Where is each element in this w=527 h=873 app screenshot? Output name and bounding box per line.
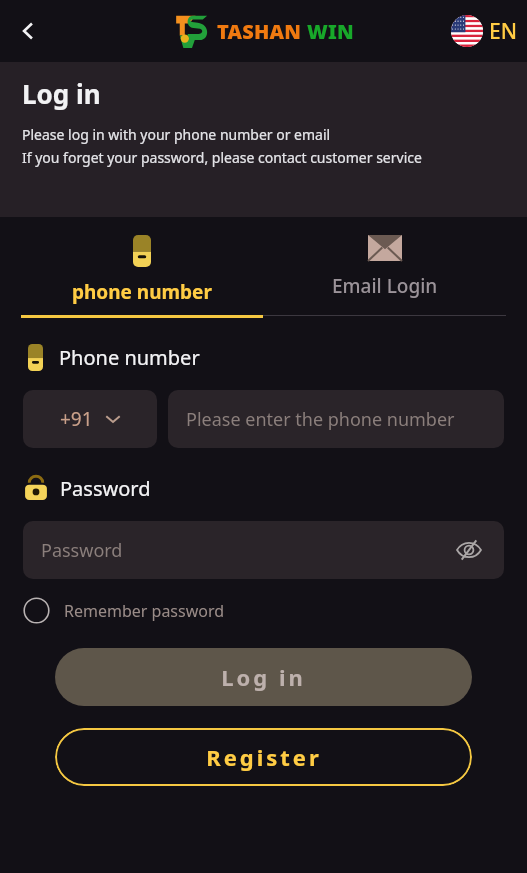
button[interactable]: Password — [23, 521, 504, 579]
button[interactable]: Register — [55, 728, 472, 786]
button[interactable]: Log in — [55, 648, 472, 706]
staticText: TASHAN — [217, 18, 302, 45]
staticText: Please enter the phone number — [186, 407, 455, 432]
staticText: Remember password — [64, 600, 225, 622]
staticText: If you forget your password, please cont… — [22, 148, 422, 167]
button[interactable]: Back — [6, 9, 50, 53]
button[interactable]: Email Login — [263, 229, 506, 309]
staticText: EN — [489, 17, 517, 46]
staticText: Password — [60, 475, 151, 502]
staticText: WIN — [307, 18, 354, 45]
staticText: phone number — [72, 279, 212, 305]
staticText: +91 — [60, 406, 93, 432]
staticText: Email Login — [332, 273, 438, 299]
staticText: Please log in with your phone number or … — [22, 125, 331, 144]
button[interactable]: Show password — [452, 533, 486, 567]
staticText: Register — [206, 742, 322, 772]
button[interactable]: EN — [451, 15, 517, 47]
button[interactable]: Please enter the phone number — [168, 390, 504, 448]
button[interactable]: phone number — [21, 229, 263, 315]
staticText: Password — [41, 538, 123, 563]
staticText: Log in — [221, 662, 306, 692]
button[interactable]: +91 — [23, 390, 157, 448]
staticText: Phone number — [59, 344, 200, 371]
staticText: Log in — [22, 76, 101, 111]
button[interactable]: Remember password — [23, 597, 225, 624]
